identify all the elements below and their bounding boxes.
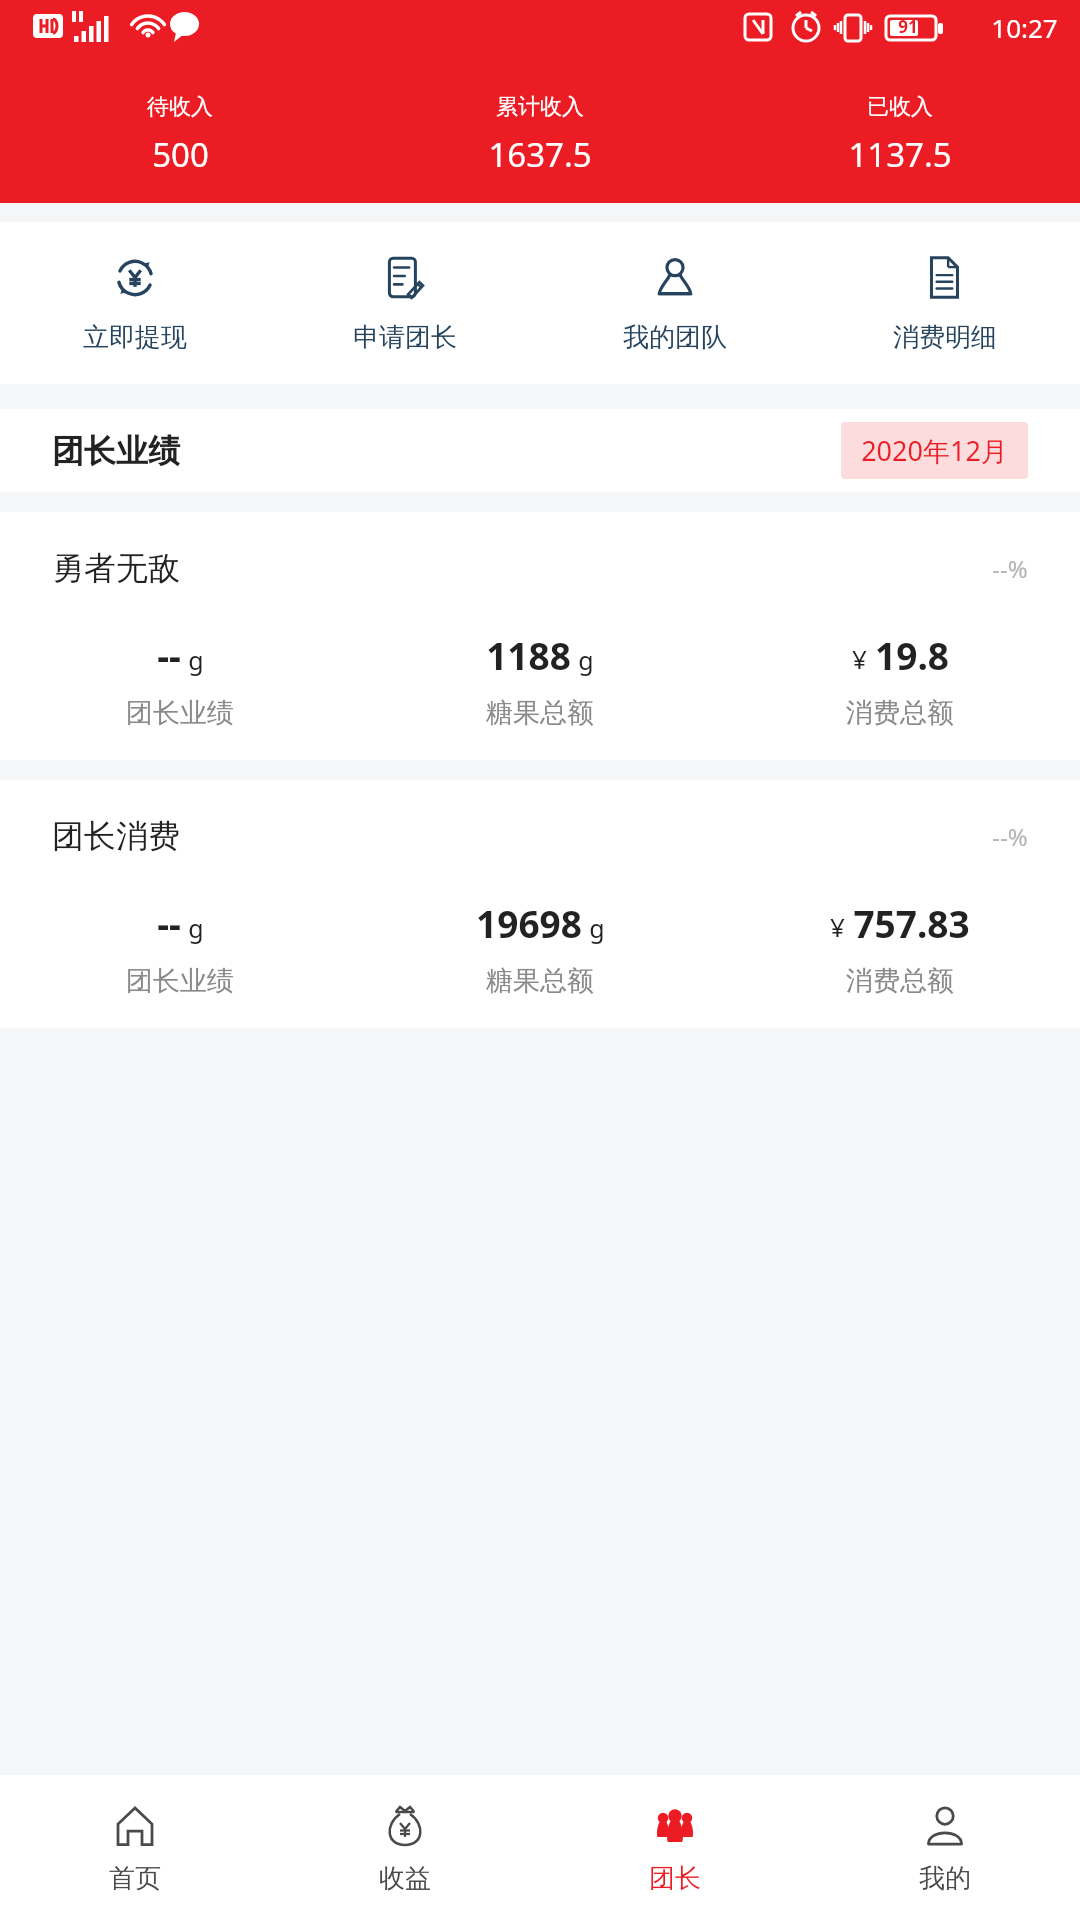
staticText: ¥ (852, 641, 867, 676)
button[interactable]: 团长消费 (0, 780, 1080, 1028)
staticText: 团长业绩 (52, 431, 180, 471)
button[interactable]: 我的 (810, 1775, 1080, 1920)
staticText: -- (157, 898, 181, 948)
staticText: 19.8 (875, 630, 949, 680)
staticText: 累计收入 (496, 93, 584, 121)
staticText: 1137.5 (848, 132, 952, 177)
staticText: 2020年12月 (861, 432, 1008, 469)
staticText: 首页 (109, 1862, 161, 1895)
button[interactable]: 团长 (540, 1775, 810, 1920)
staticText: -- (157, 630, 181, 680)
staticText: 500 (152, 132, 209, 177)
staticText: 消费总额 (846, 696, 954, 730)
staticText: g (578, 643, 594, 677)
staticText: g (188, 643, 204, 677)
staticText: 1637.5 (488, 132, 592, 177)
staticText: 我的团队 (623, 321, 727, 354)
staticText: 团长消费 (52, 816, 180, 856)
button[interactable]: 我的团队 (540, 222, 810, 384)
staticText: 1188 (486, 630, 571, 680)
staticText: 待收入 (147, 93, 213, 121)
staticText: 糖果总额 (486, 964, 594, 998)
button[interactable]: 申请团长 (270, 222, 540, 384)
button[interactable]: 已收入 (720, 93, 1080, 177)
staticText: 消费总额 (846, 964, 954, 998)
staticText: 消费明细 (893, 321, 997, 354)
button[interactable]: 收益 (270, 1775, 540, 1920)
button[interactable]: 消费明细 (810, 222, 1080, 384)
staticText: 10:27 (991, 10, 1058, 45)
staticText: ¥ (830, 909, 845, 944)
staticText: --% (992, 820, 1028, 853)
staticText: 糖果总额 (486, 696, 594, 730)
staticText: 91 (898, 15, 918, 38)
staticText: g (589, 911, 605, 945)
staticText: 立即提现 (83, 321, 187, 354)
staticText: 19698 (476, 898, 582, 948)
staticText: 勇者无敌 (52, 548, 180, 588)
staticText: 申请团长 (353, 321, 457, 354)
button[interactable]: 2020年12月 (841, 422, 1028, 479)
staticText: 团长 (649, 1862, 701, 1895)
button[interactable]: 累计收入 (360, 93, 720, 177)
button[interactable]: 待收入 (0, 93, 360, 177)
staticText: 收益 (379, 1862, 431, 1895)
staticText: 团长业绩 (126, 964, 234, 998)
staticText: --% (992, 552, 1028, 585)
button[interactable]: 首页 (0, 1775, 270, 1920)
staticText: 757.83 (853, 898, 970, 948)
button[interactable]: 勇者无敌 (0, 512, 1080, 760)
button[interactable]: 立即提现 (0, 222, 270, 384)
staticText: 已收入 (867, 93, 933, 121)
staticText: 我的 (919, 1862, 971, 1895)
staticText: 团长业绩 (126, 696, 234, 730)
staticText: g (188, 911, 204, 945)
